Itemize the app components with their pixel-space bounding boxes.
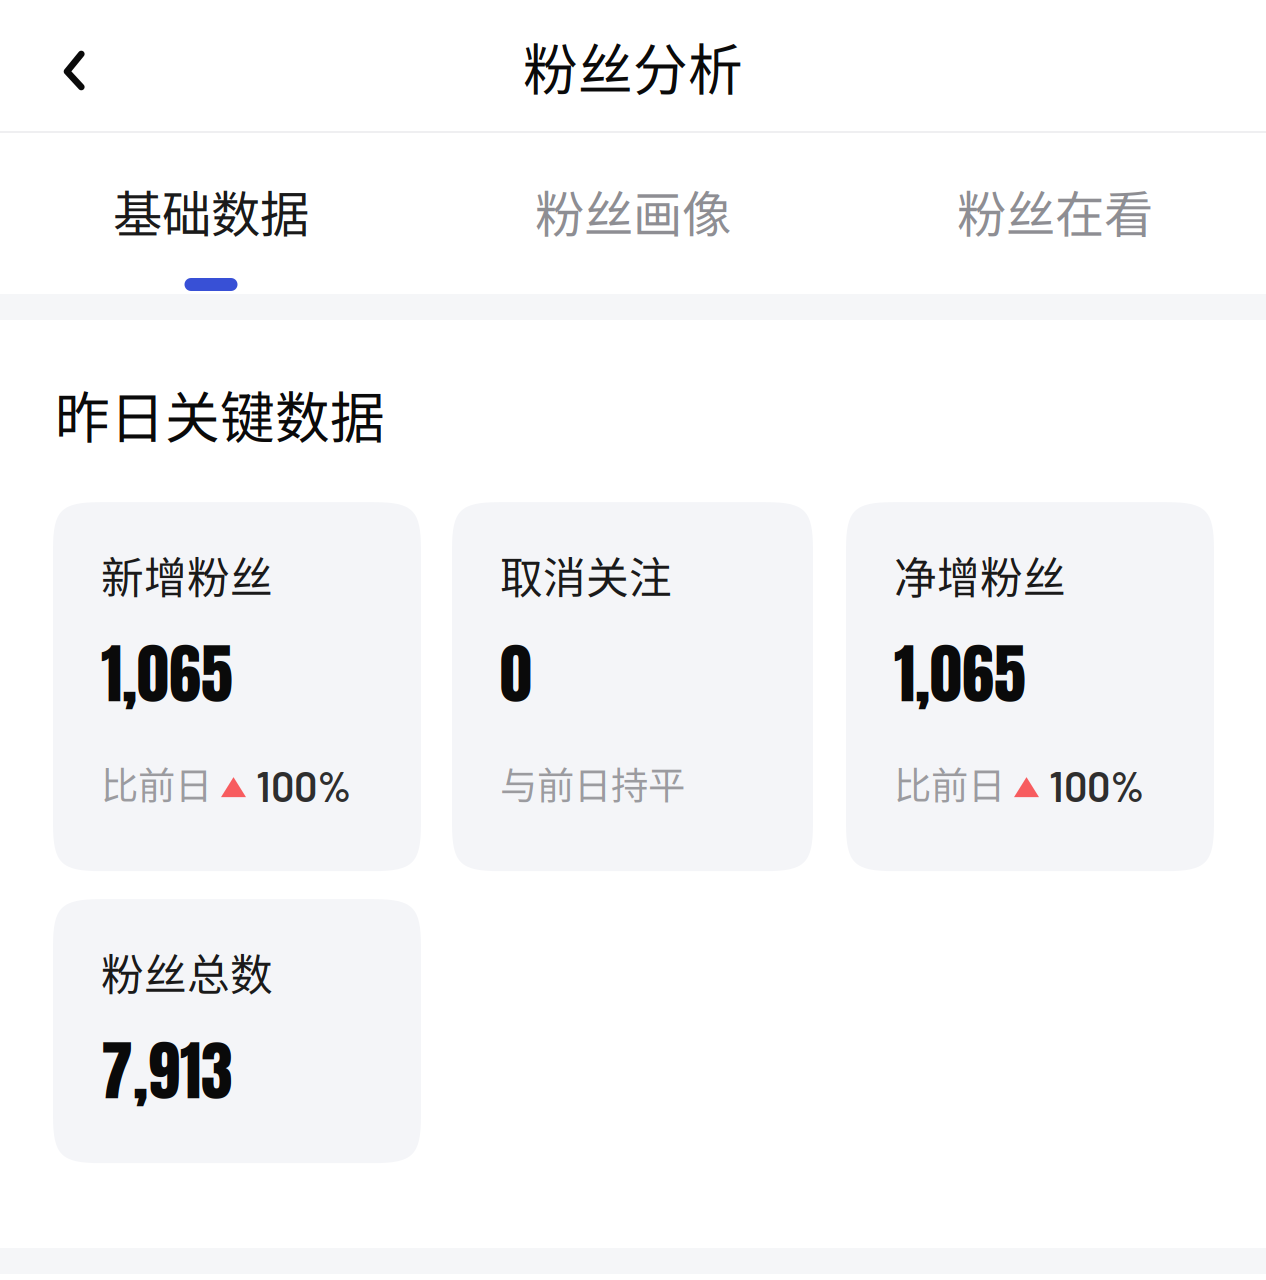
staticText: 净增粉丝 [894, 544, 1066, 606]
staticText: 昨日关键数据 [55, 374, 385, 453]
staticText: 粉丝分析 [523, 26, 743, 105]
staticText: 100% [256, 761, 351, 810]
staticText: 基础数据 [113, 175, 309, 246]
staticText: 100% [1049, 761, 1144, 810]
staticText: 0 [500, 626, 532, 722]
staticText: 粉丝总数 [101, 941, 273, 1003]
staticText: 取消关注 [500, 544, 672, 606]
staticText: 比前日 [101, 756, 212, 810]
button[interactable]: Back [0, 0, 128, 131]
staticText: 比前日 [894, 756, 1005, 810]
staticText: 1,065 [894, 626, 1026, 722]
button[interactable]: 粉丝画像 [422, 133, 844, 294]
staticText: 新增粉丝 [101, 544, 273, 606]
staticText: 粉丝在看 [957, 175, 1153, 246]
staticText: 粉丝画像 [535, 175, 731, 246]
staticText: 7,913 [101, 1023, 233, 1119]
button[interactable]: 基础数据 [0, 133, 422, 294]
button[interactable]: 粉丝在看 [844, 133, 1266, 294]
staticText: 1,065 [101, 626, 233, 722]
staticText: 与前日持平 [500, 756, 685, 810]
